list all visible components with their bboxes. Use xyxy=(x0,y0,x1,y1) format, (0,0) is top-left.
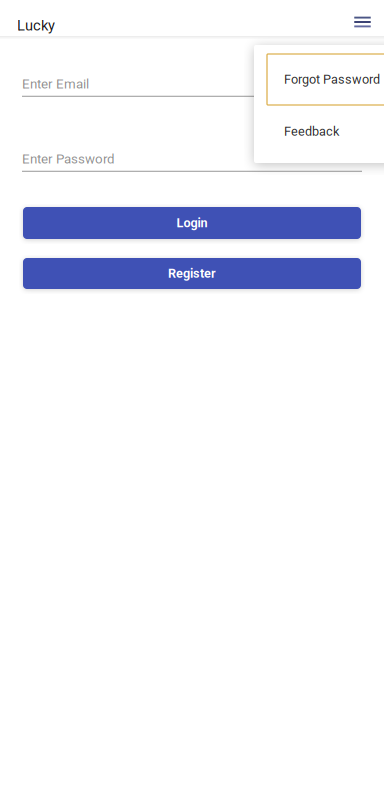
staticText: Feedback xyxy=(284,124,339,139)
button[interactable]: Menu xyxy=(349,0,375,36)
staticText: Enter Password xyxy=(22,151,115,167)
button[interactable]: Forgot Password xyxy=(267,54,384,105)
button[interactable]: Register xyxy=(23,258,361,289)
button[interactable]: Enter Password xyxy=(22,152,362,172)
staticText: Login xyxy=(176,216,207,230)
button[interactable]: Enter Email xyxy=(22,77,362,97)
button[interactable]: Login xyxy=(23,207,361,239)
staticText: Enter Email xyxy=(22,76,89,92)
staticText: Register xyxy=(168,266,216,281)
staticText: Lucky xyxy=(17,17,55,34)
button[interactable]: Feedback xyxy=(254,106,384,157)
staticText: Forgot Password xyxy=(284,72,380,87)
